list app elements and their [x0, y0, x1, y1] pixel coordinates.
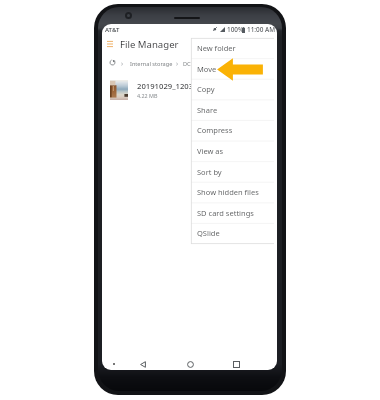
staticText: Compress	[197, 125, 233, 135]
button[interactable]: Recent apps	[229, 357, 243, 370]
staticText: ›	[121, 59, 124, 69]
button[interactable]: 20191029_1203	[102, 76, 277, 104]
staticText: 11:00 AM	[247, 25, 276, 34]
staticText: Sort by	[197, 167, 222, 177]
staticText: QSlide	[197, 228, 220, 238]
staticText: View as	[197, 146, 224, 156]
staticText: Move	[197, 64, 217, 74]
staticText: Share	[197, 105, 218, 115]
button[interactable]: Compress	[191, 120, 274, 141]
button[interactable]: SD card settings	[191, 203, 274, 224]
button[interactable]: View as	[191, 141, 274, 162]
staticText: Internal storage	[130, 60, 173, 68]
button[interactable]: Refresh	[110, 60, 115, 65]
button[interactable]: Home	[183, 357, 197, 370]
staticText: 20191029_1203	[137, 81, 194, 91]
staticText: DCIM	[183, 60, 198, 68]
staticText: Copy	[197, 84, 215, 94]
staticText: AT&T	[105, 26, 120, 34]
button[interactable]: Copy	[191, 79, 274, 100]
staticText: 4.22 MB	[137, 92, 158, 99]
button[interactable]: Share	[191, 100, 274, 121]
staticText: New folder	[197, 43, 236, 53]
staticText: ›	[176, 59, 179, 69]
staticText: File Manager	[120, 38, 179, 51]
button[interactable]: Open navigation drawer	[102, 37, 119, 51]
button[interactable]: Move	[191, 59, 274, 80]
button[interactable]: QSlide	[191, 223, 274, 244]
button[interactable]: Back	[136, 357, 150, 370]
button[interactable]: New folder	[191, 38, 274, 59]
staticText: Show hidden files	[197, 187, 259, 197]
staticText: SD card settings	[197, 208, 254, 218]
button[interactable]: Sort by	[191, 162, 274, 183]
button[interactable]: Show hidden files	[191, 182, 274, 203]
staticText: 100%	[227, 25, 244, 34]
